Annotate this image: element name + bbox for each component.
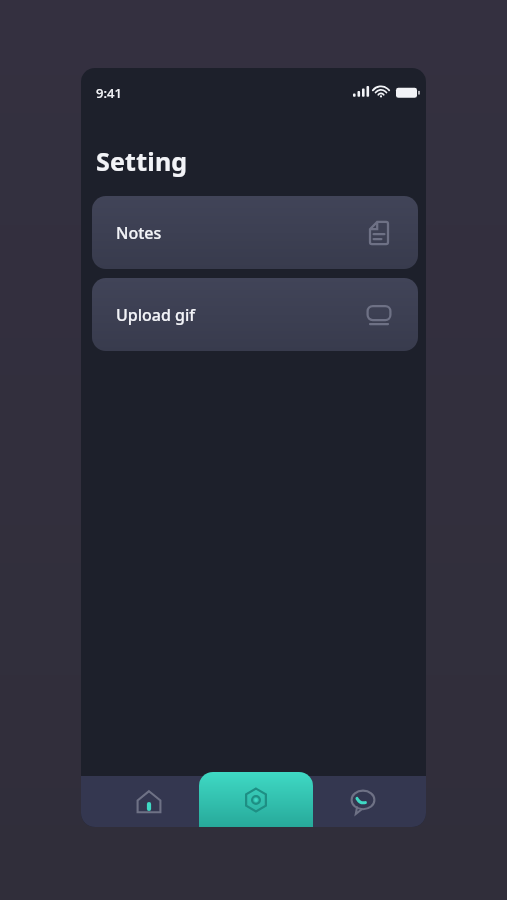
staticText: 9:41 <box>96 84 122 102</box>
button[interactable]: Upload gif <box>92 278 418 351</box>
button[interactable]: Messages <box>313 776 413 827</box>
staticText: Notes <box>116 222 162 244</box>
staticText: Setting <box>96 144 188 178</box>
staticText: Upload gif <box>116 304 196 326</box>
button[interactable]: Home <box>99 776 199 827</box>
button[interactable]: Settings <box>199 772 313 827</box>
button[interactable]: Notes <box>92 196 418 269</box>
